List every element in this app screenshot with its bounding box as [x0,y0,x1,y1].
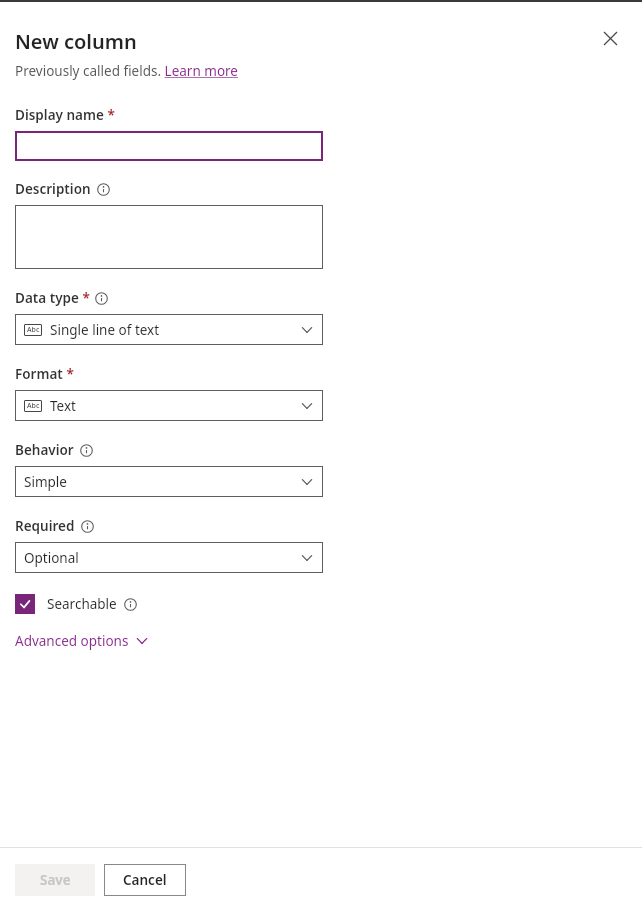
staticText: Searchable [47,595,117,613]
staticText: Description [15,180,91,198]
button[interactable]: Close [594,22,626,54]
button[interactable]: Searchable [15,594,137,614]
button[interactable]: Advanced options [15,632,149,650]
staticText: Display name [15,106,104,124]
button[interactable]: Abc [15,314,323,345]
staticText: Single line of text [50,321,300,339]
staticText: * [104,106,115,124]
button[interactable]: Optional [15,542,323,573]
staticText: Save [40,871,71,889]
staticText: Simple [24,473,300,491]
button[interactable]: Cancel [104,864,186,896]
button[interactable]: Abc [15,390,323,421]
staticText: Abc [27,401,40,411]
staticText: Required [15,517,75,535]
button[interactable] [15,205,323,269]
staticText: Behavior [15,441,74,459]
staticText: Data type [15,289,79,307]
button[interactable] [15,131,323,161]
staticText: Abc [27,325,40,335]
staticText: New column [15,28,137,55]
staticText: Advanced options [15,632,129,650]
staticText: Format [15,365,63,383]
staticText: Optional [24,549,300,567]
staticText: * [63,365,74,383]
staticText: Previously called fields. Learn more [15,62,238,80]
staticText: Cancel [123,871,167,889]
staticText: * [79,289,90,307]
button[interactable]: Save [15,864,95,896]
staticText: Text [50,397,300,415]
button[interactable]: Simple [15,466,323,497]
